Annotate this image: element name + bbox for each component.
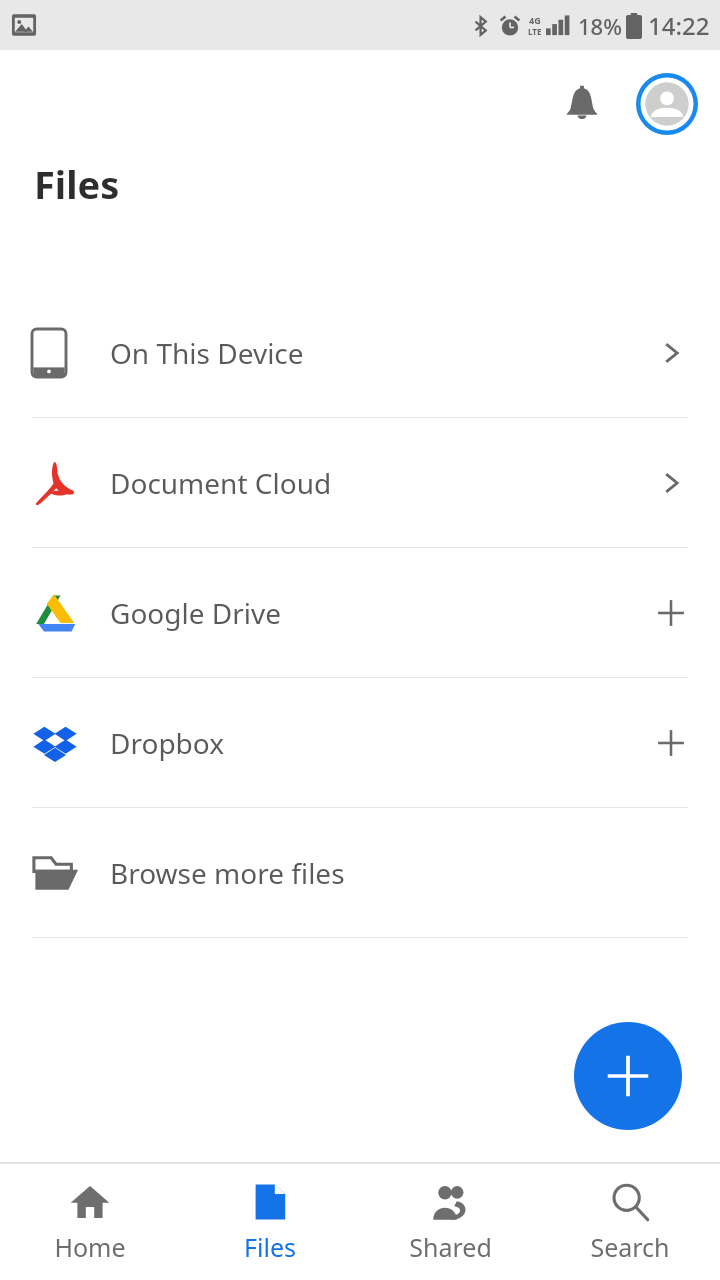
button[interactable]: Shared <box>360 1172 540 1272</box>
staticText: Home <box>54 1230 126 1264</box>
staticText: Document Cloud <box>110 464 654 502</box>
staticText: On This Device <box>110 334 654 372</box>
button[interactable]: Home <box>0 1172 180 1272</box>
staticText: Google Drive <box>110 594 654 632</box>
button[interactable]: On This Device <box>0 288 720 417</box>
staticText: Files <box>34 158 120 210</box>
staticText: Search <box>590 1230 670 1264</box>
staticText: LTE <box>528 26 542 37</box>
staticText: Files <box>244 1230 296 1264</box>
button[interactable]: Dropbox <box>0 678 720 807</box>
staticText: Shared <box>409 1230 492 1264</box>
staticText: 18% <box>578 11 622 41</box>
button[interactable]: Search <box>540 1172 720 1272</box>
staticText: 4G <box>529 14 541 26</box>
button[interactable]: Google Drive <box>0 548 720 677</box>
staticText: Browse more files <box>110 854 654 892</box>
button[interactable]: Files <box>180 1172 360 1272</box>
button[interactable]: Document Cloud <box>0 418 720 547</box>
staticText: Dropbox <box>110 724 654 762</box>
button[interactable]: Browse more files <box>0 808 720 937</box>
button[interactable]: Notifications <box>550 72 614 136</box>
button[interactable]: Create <box>574 1022 682 1130</box>
button[interactable]: Account <box>636 73 698 135</box>
staticText: 14:22 <box>648 9 710 42</box>
